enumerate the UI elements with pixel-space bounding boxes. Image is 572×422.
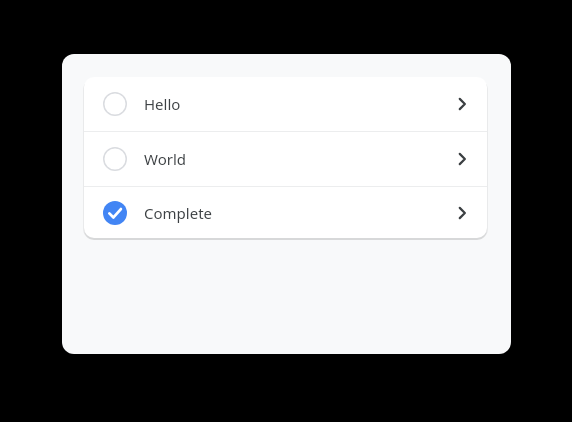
other: Open World [454,151,470,167]
button[interactable]: Complete [84,187,487,238]
other: Open Complete [454,205,470,221]
other: Open Hello [454,96,470,112]
staticText: Hello [144,94,181,114]
staticText: Complete [144,203,213,223]
button[interactable]: World [84,132,487,186]
button[interactable]: Hello [84,77,487,131]
staticText: World [144,149,187,169]
